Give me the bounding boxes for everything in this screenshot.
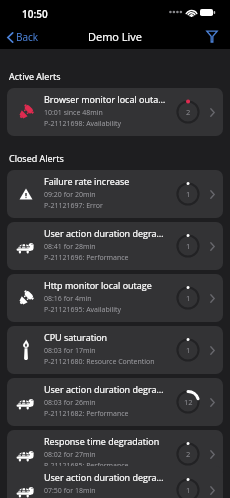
button[interactable]: CPU saturation [7,326,223,374]
button[interactable]: Failure rate increase [7,170,223,218]
staticText: 08:02 for 27min [44,450,96,460]
staticText: CPU saturation [44,331,166,343]
staticText: P-21121682: Performance [44,409,129,419]
staticText: Back [16,30,39,44]
staticText: Closed Alerts [9,152,64,164]
staticText: 2 [186,449,191,459]
button[interactable]: Response time degradation [7,430,223,478]
staticText: Failure rate increase [44,175,166,187]
staticText: P-21121696: Performance [44,253,129,263]
staticText: P-21121680: Resource Contention [44,357,155,367]
staticText: 1 [186,345,191,355]
staticText: 1 [186,189,191,199]
staticText: 1 [186,241,191,251]
staticText: P-21121685: Performance [44,461,129,471]
staticText: 2 [186,107,191,117]
staticText: 07:50 for 18min [44,486,96,496]
staticText: P-21121695: Availability [44,305,121,315]
button[interactable]: Http monitor local outage [7,274,223,322]
staticText: Response time degradation [44,435,166,447]
staticText: Http monitor local outage [44,279,166,291]
staticText: 10:01 since 48min [44,108,103,118]
staticText: 12 [184,397,193,407]
staticText: User action duration degra… [44,471,166,483]
staticText: 1 [186,485,191,495]
staticText: Active Alerts [9,70,61,82]
button[interactable]: User action duration degra… [7,466,223,498]
staticText: 09:20 for 20min [44,190,96,200]
staticText: 08:41 for 28min [44,242,96,252]
staticText: 08:16 for 4min [44,294,92,304]
button[interactable]: User action duration degra… [7,378,223,426]
button[interactable]: User action duration degra… [7,222,223,270]
button[interactable]: Filter [199,27,230,46]
staticText: 08:03 for 17min [44,346,96,356]
staticText: User action duration degra… [44,383,166,395]
staticText: P-21121697: Error [44,201,103,211]
staticText: 08:03 for 26min [44,398,96,408]
button[interactable]: Browser monitor local outa… [7,88,223,136]
staticText: Browser monitor local outa… [44,93,166,105]
staticText: Demo Live [88,29,143,44]
staticText: P-21121698: Availability [44,119,121,129]
button[interactable]: Back [0,26,47,48]
staticText: User action duration degra… [44,227,166,239]
staticText: 10:50 [22,7,48,21]
staticText: 1 [186,293,191,303]
